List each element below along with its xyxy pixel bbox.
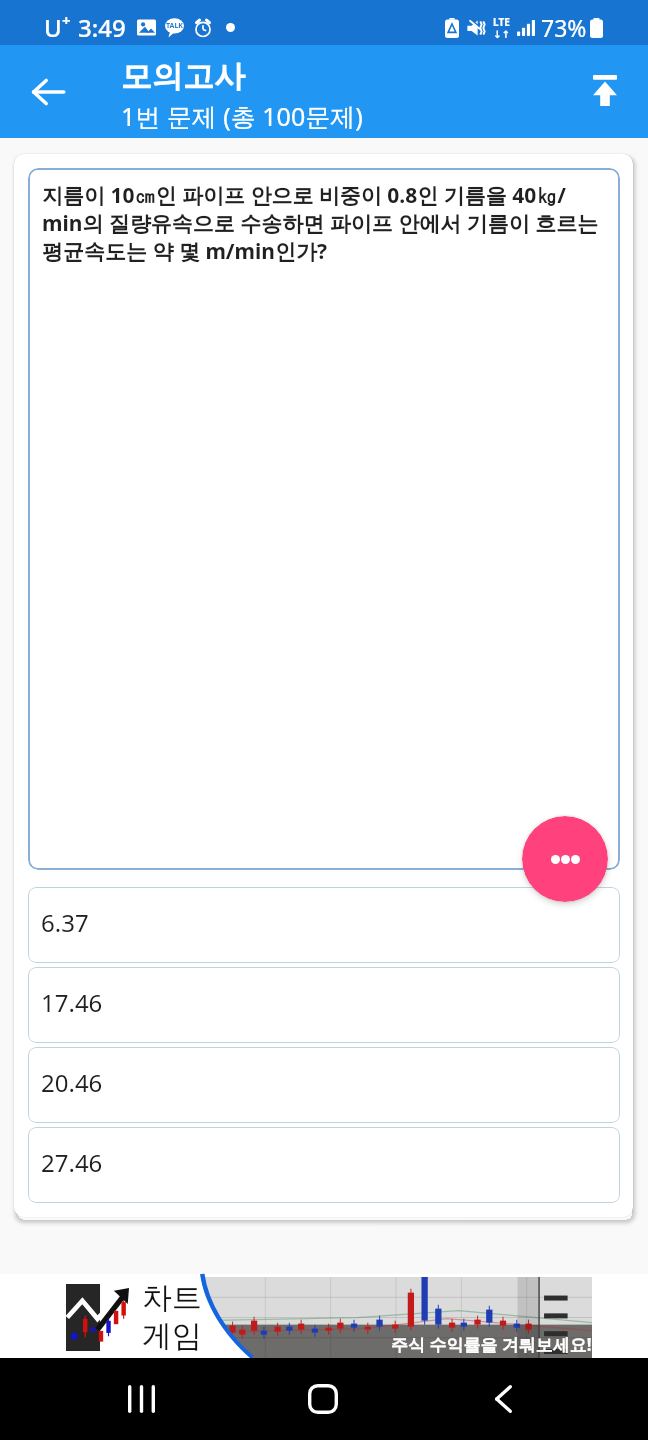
staticText: 차트 — [142, 1279, 202, 1317]
staticText: + — [62, 10, 71, 30]
staticText: 지름이 10㎝인 파이프 안으로 비중이 0.8인 기름을 40㎏/ min의 … — [42, 181, 599, 265]
button[interactable]: 6.37 — [28, 887, 620, 963]
button[interactable]: 27.46 — [28, 1127, 620, 1203]
staticText: 모의고사 — [121, 57, 245, 96]
staticText: ↓↑ — [493, 29, 510, 41]
staticText: 1번 문제 (총 100문제) — [121, 99, 363, 133]
staticText: 17.46 — [41, 986, 103, 1019]
button[interactable]: Submit — [573, 60, 637, 124]
staticText: 73% — [541, 12, 587, 43]
button[interactable]: Back — [14, 58, 82, 126]
staticText: 6.37 — [41, 906, 89, 939]
staticText: 게임 — [142, 1317, 202, 1355]
staticText: 주식 수익률을 겨뤄보세요! — [391, 1333, 592, 1356]
staticText: TALK — [166, 21, 183, 31]
button[interactable]: 17.46 — [28, 967, 620, 1043]
button[interactable]: Home — [287, 1363, 359, 1435]
button[interactable]: Back — [467, 1363, 539, 1435]
button[interactable]: Recent apps — [105, 1363, 177, 1435]
staticText: LTE — [493, 15, 510, 29]
staticText: 20.46 — [41, 1066, 103, 1099]
staticText: 3:49 — [78, 11, 126, 44]
staticText: 27.46 — [41, 1146, 103, 1179]
button[interactable]: More options — [522, 816, 608, 902]
button[interactable]: 20.46 — [28, 1047, 620, 1123]
staticText: U — [44, 11, 62, 44]
